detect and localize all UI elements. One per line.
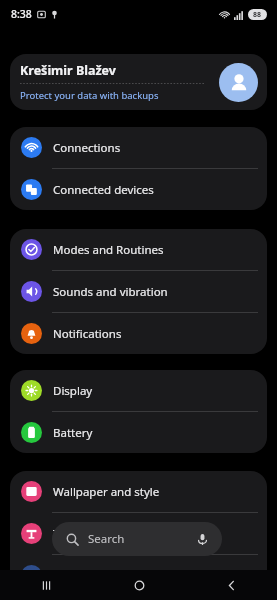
button[interactable]: Display — [10, 370, 267, 411]
staticText: Krešimir Blažev — [20, 62, 116, 79]
button[interactable]: Notifications — [10, 313, 267, 354]
button[interactable]: Voice search — [191, 528, 213, 550]
button[interactable]: Home — [93, 570, 185, 600]
staticText: Protect your data with backups — [20, 89, 159, 102]
staticText: Home screen — [53, 568, 125, 584]
staticText: Themes — [53, 526, 96, 542]
staticText: Search — [88, 531, 125, 547]
staticText: Notifications — [53, 326, 122, 342]
button[interactable]: Krešimir Blažev — [10, 54, 267, 110]
button[interactable]: Connections — [10, 127, 267, 168]
staticText: 8:38 — [11, 7, 32, 21]
staticText: Connections — [53, 140, 121, 156]
staticText: Sounds and vibration — [53, 284, 168, 300]
button[interactable]: Account avatar — [219, 63, 258, 102]
button[interactable]: Wallpaper and style — [10, 471, 267, 512]
button[interactable]: Search — [52, 522, 222, 556]
button[interactable]: Modes and Routines — [10, 229, 267, 270]
button[interactable]: Sounds and vibration — [10, 271, 267, 312]
button[interactable]: Recents — [0, 570, 93, 600]
staticText: 88 — [253, 10, 262, 20]
button[interactable]: Themes — [10, 513, 267, 554]
staticText: Wallpaper and style — [53, 484, 160, 500]
button[interactable]: Back — [185, 570, 277, 600]
button[interactable]: Home screen — [10, 555, 267, 596]
staticText: Modes and Routines — [53, 242, 164, 258]
button[interactable]: Battery — [10, 412, 267, 453]
staticText: Connected devices — [53, 182, 154, 198]
staticText: Display — [53, 383, 93, 399]
staticText: Battery — [53, 425, 93, 441]
button[interactable]: Connected devices — [10, 169, 267, 210]
